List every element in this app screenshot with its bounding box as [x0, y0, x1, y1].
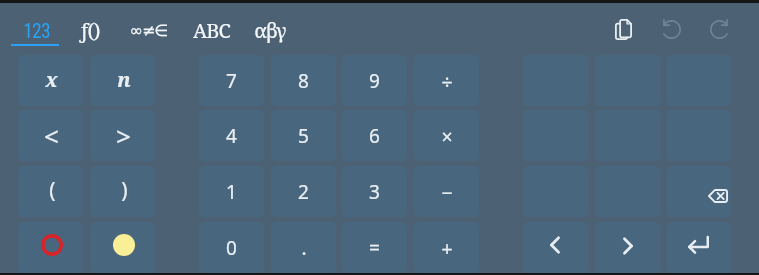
button[interactable]: Undo	[659, 17, 684, 42]
staticText: >	[116, 118, 131, 153]
button[interactable]: .	[271, 222, 336, 273]
staticText: ×	[441, 123, 453, 150]
button[interactable]: Red point colour	[18, 222, 83, 273]
button[interactable]: +	[414, 222, 479, 273]
button[interactable]: 6	[342, 110, 407, 161]
staticText: +	[441, 235, 453, 262]
staticText: ƒ()	[79, 17, 100, 44]
button[interactable]: αβγ	[237, 10, 303, 50]
button[interactable]: Redo	[707, 17, 732, 42]
staticText: n	[117, 66, 131, 93]
button[interactable]: =	[342, 222, 407, 273]
button[interactable]: >	[90, 110, 155, 161]
staticText: ÷	[441, 68, 453, 95]
staticText: ABC	[193, 17, 230, 44]
button[interactable]: ABC	[178, 10, 244, 50]
button[interactable]: 5	[271, 110, 336, 161]
staticText: x	[45, 66, 58, 93]
button[interactable]: <	[18, 110, 83, 161]
button[interactable]: Copy	[611, 17, 636, 42]
staticText: 123	[23, 20, 50, 43]
button[interactable]: n	[90, 55, 155, 106]
staticText: αβγ	[254, 17, 286, 44]
button[interactable]: −	[414, 166, 479, 217]
button[interactable]: Backspace	[666, 166, 731, 217]
staticText: 6	[369, 123, 380, 149]
button[interactable]: Enter	[666, 222, 731, 273]
staticText: .	[301, 235, 307, 261]
staticText: 4	[226, 123, 237, 149]
button[interactable]: ∞≠∈	[115, 10, 181, 50]
staticText: 1	[226, 179, 237, 205]
button[interactable]: Cursor right	[595, 222, 660, 273]
staticText: )	[121, 176, 128, 205]
button[interactable]: 9	[342, 55, 407, 106]
button[interactable]: 2	[271, 166, 336, 217]
staticText: (	[49, 176, 56, 205]
button[interactable]: 0	[199, 222, 264, 273]
staticText: 7	[226, 68, 237, 94]
button[interactable]: 3	[342, 166, 407, 217]
button[interactable]: 7	[199, 55, 264, 106]
staticText: =	[369, 235, 380, 261]
button[interactable]: 123	[3, 10, 69, 50]
button[interactable]: ƒ()	[56, 10, 122, 50]
button[interactable]: Yellow point colour	[90, 222, 155, 273]
button[interactable]: 4	[199, 110, 264, 161]
button[interactable]: x	[18, 55, 83, 106]
button[interactable]: 8	[271, 55, 336, 106]
staticText: 3	[369, 179, 380, 205]
button[interactable]: )	[90, 166, 155, 217]
button[interactable]: 1	[199, 166, 264, 217]
staticText: 8	[298, 68, 309, 94]
staticText: <	[44, 118, 59, 153]
staticText: 2	[298, 179, 309, 205]
button[interactable]: Cursor left	[523, 222, 588, 273]
staticText: 0	[226, 235, 237, 261]
staticText: 9	[369, 68, 380, 94]
button[interactable]: ÷	[414, 55, 479, 106]
button[interactable]: ×	[414, 110, 479, 161]
staticText: −	[441, 179, 453, 206]
staticText: ∞≠∈	[129, 21, 168, 40]
staticText: 5	[298, 123, 309, 149]
button[interactable]: (	[18, 166, 83, 217]
